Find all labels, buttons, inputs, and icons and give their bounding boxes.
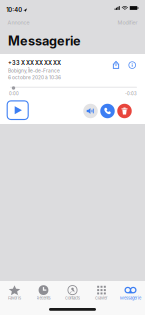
staticText: Clavier [95,296,108,300]
button[interactable]: Clavier [87,281,116,301]
staticText: Contacts [65,296,80,300]
button[interactable]: Haut-parleur [83,104,98,118]
staticText: Messagerie [8,33,81,49]
button[interactable]: Favoris [0,281,29,301]
button[interactable]: Récents [29,281,58,301]
button[interactable]: Supprimer [117,104,132,118]
button[interactable]: Informations [126,59,139,72]
staticText: Récents [36,296,50,300]
button[interactable]: Annonce [6,18,31,27]
staticText: 10:40 [6,6,22,13]
button[interactable]: Modifier [116,18,139,27]
staticText: Favoris [8,296,21,300]
button[interactable]: Lire [7,101,28,119]
button[interactable]: Messagerie [116,281,145,301]
staticText: Messagerie [120,296,141,300]
button[interactable]: Contacts [58,281,87,301]
staticText: Modifier [117,19,137,26]
staticText: 6 octobre 2020 à 10:36 [8,74,61,80]
staticText: +33 X XX XX XX XX [8,59,61,66]
button[interactable]: Appeler [100,104,115,118]
button[interactable]: Partager [109,58,122,71]
staticText: -0:03 [125,91,137,96]
staticText: Annonce [7,19,29,26]
staticText: 0:00 [9,91,19,96]
staticText: Bobigny, Île-de-France [8,68,60,74]
